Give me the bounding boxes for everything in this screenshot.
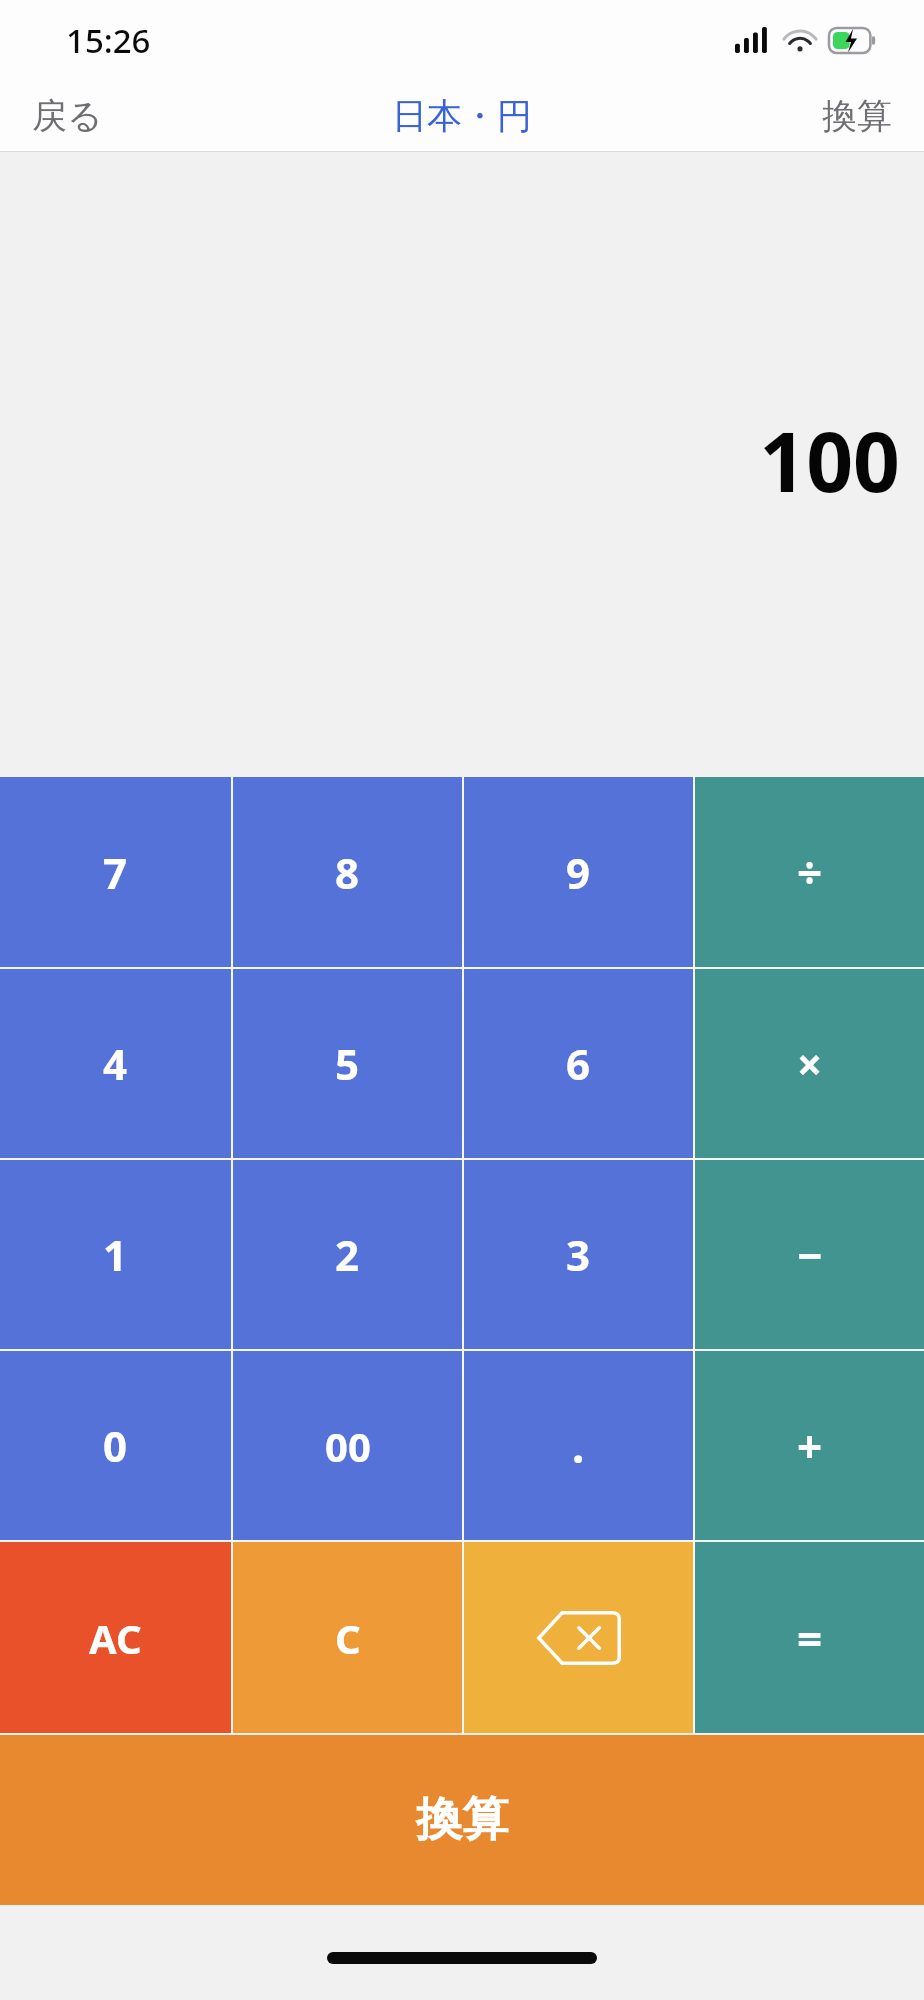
- button[interactable]: =: [695, 1542, 924, 1733]
- staticText: 2: [335, 1226, 360, 1283]
- staticText: 4: [103, 1035, 128, 1092]
- button[interactable]: Backspace: [464, 1542, 693, 1733]
- staticText: 100: [759, 404, 900, 516]
- button[interactable]: 4: [0, 969, 231, 1158]
- staticText: 5: [335, 1035, 360, 1092]
- staticText: AC: [89, 1611, 142, 1665]
- button[interactable]: 1: [0, 1160, 231, 1349]
- button[interactable]: 換算: [0, 1735, 924, 1905]
- staticText: 7: [103, 844, 128, 901]
- staticText: 日本・円: [392, 94, 532, 138]
- staticText: 00: [325, 1419, 371, 1473]
- button[interactable]: ÷: [695, 777, 924, 967]
- staticText: C: [335, 1611, 361, 1665]
- button[interactable]: 5: [233, 969, 462, 1158]
- button[interactable]: 8: [233, 777, 462, 967]
- staticText: 0: [103, 1417, 128, 1474]
- button[interactable]: 戻る: [0, 84, 127, 148]
- staticText: 1: [103, 1226, 128, 1283]
- button[interactable]: 7: [0, 777, 231, 967]
- staticText: 換算: [822, 94, 892, 138]
- button[interactable]: ×: [695, 969, 924, 1158]
- button[interactable]: 00: [233, 1351, 462, 1540]
- button[interactable]: .: [464, 1351, 693, 1540]
- staticText: =: [797, 1608, 823, 1668]
- staticText: +: [797, 1416, 823, 1476]
- staticText: 15:26: [66, 18, 151, 63]
- staticText: 6: [566, 1035, 591, 1092]
- button[interactable]: 6: [464, 969, 693, 1158]
- staticText: 戻る: [32, 94, 103, 138]
- button[interactable]: 換算: [798, 84, 924, 148]
- staticText: 9: [566, 844, 591, 901]
- button[interactable]: 2: [233, 1160, 462, 1349]
- staticText: 換算: [416, 1791, 508, 1849]
- button[interactable]: +: [695, 1351, 924, 1540]
- staticText: −: [797, 1225, 823, 1285]
- button[interactable]: 9: [464, 777, 693, 967]
- button[interactable]: −: [695, 1160, 924, 1349]
- staticText: 3: [566, 1226, 591, 1283]
- button[interactable]: 0: [0, 1351, 231, 1540]
- staticText: ×: [797, 1034, 823, 1094]
- staticText: .: [572, 1416, 585, 1476]
- staticText: ÷: [797, 842, 823, 902]
- staticText: 8: [335, 844, 360, 901]
- button[interactable]: 3: [464, 1160, 693, 1349]
- button[interactable]: AC: [0, 1542, 231, 1733]
- button[interactable]: C: [233, 1542, 462, 1733]
